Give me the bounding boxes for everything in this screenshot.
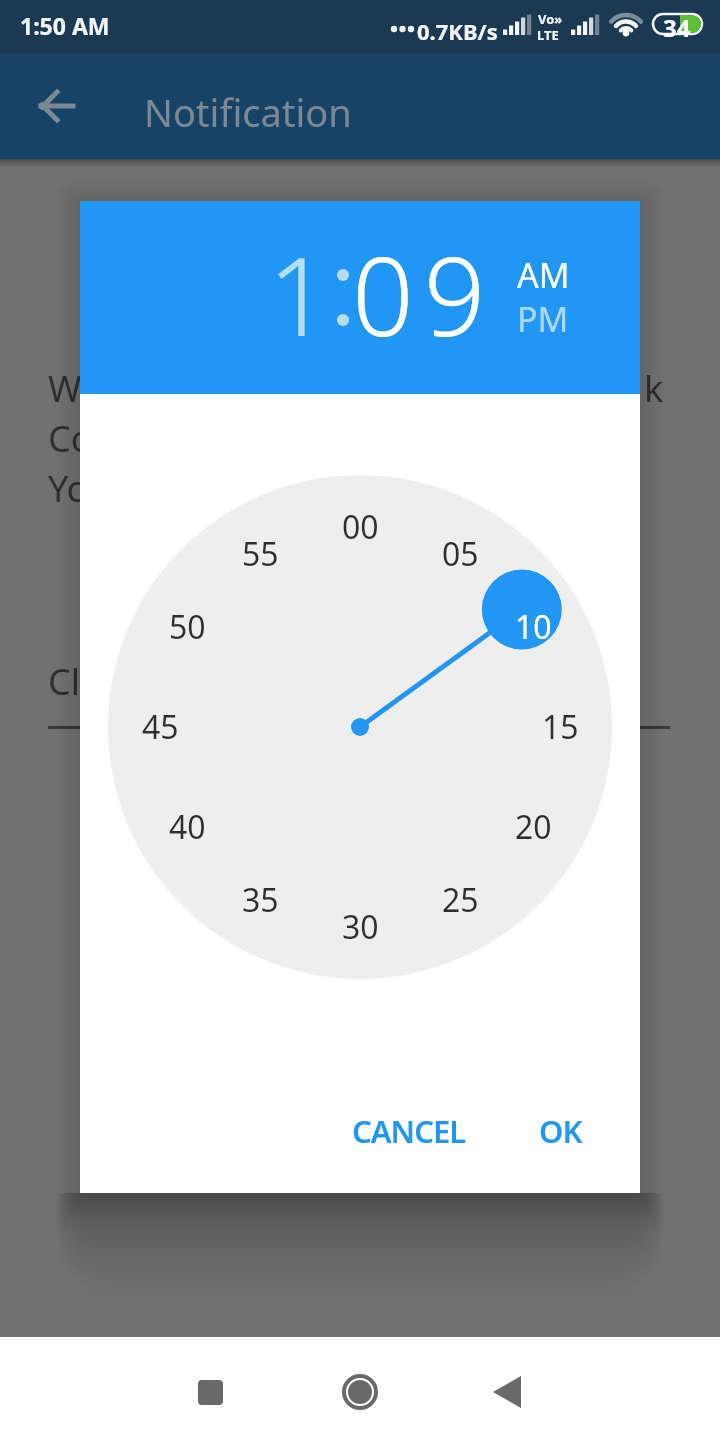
staticText: 05 xyxy=(442,532,479,576)
staticText: 30 xyxy=(342,905,379,949)
button[interactable]: CANCEL xyxy=(329,1095,489,1167)
staticText: 0.7KB/s xyxy=(417,16,498,46)
button[interactable]: 1 xyxy=(130,221,330,361)
staticText: Notification xyxy=(144,86,352,138)
staticText: 1:50 AM xyxy=(20,10,110,41)
staticText: PM xyxy=(517,296,569,340)
staticText: 09 xyxy=(352,221,496,361)
button[interactable]: 09 xyxy=(352,221,592,361)
button[interactable]: OK xyxy=(510,1095,610,1167)
staticText: Vo» xyxy=(538,10,563,28)
staticText: 15 xyxy=(542,705,579,749)
staticText: 40 xyxy=(169,805,206,849)
staticText: Co xyxy=(48,414,93,463)
staticText: OK xyxy=(539,1110,582,1152)
button[interactable] xyxy=(25,74,89,138)
staticText: 35 xyxy=(242,878,279,922)
staticText: 34 xyxy=(663,11,691,37)
button[interactable] xyxy=(475,1364,539,1420)
staticText: W xyxy=(48,364,82,413)
staticText: 10 xyxy=(515,605,552,649)
button[interactable]: AM xyxy=(503,252,583,296)
staticText: 50 xyxy=(169,605,206,649)
button[interactable] xyxy=(178,1364,242,1420)
staticText: 00 xyxy=(342,505,379,549)
staticText: 20 xyxy=(515,805,552,849)
staticText: 55 xyxy=(242,532,279,576)
button[interactable] xyxy=(328,1364,392,1420)
staticText: Cl xyxy=(48,657,81,706)
staticText: 1 xyxy=(268,221,330,361)
staticText: AM xyxy=(517,252,570,296)
staticText: CANCEL xyxy=(352,1110,466,1152)
staticText: k xyxy=(644,364,664,413)
staticText: LTE xyxy=(537,26,559,44)
button[interactable]: PM xyxy=(503,296,583,340)
staticText: Yo xyxy=(48,464,89,513)
staticText: 25 xyxy=(442,878,479,922)
staticText: 45 xyxy=(142,705,179,749)
